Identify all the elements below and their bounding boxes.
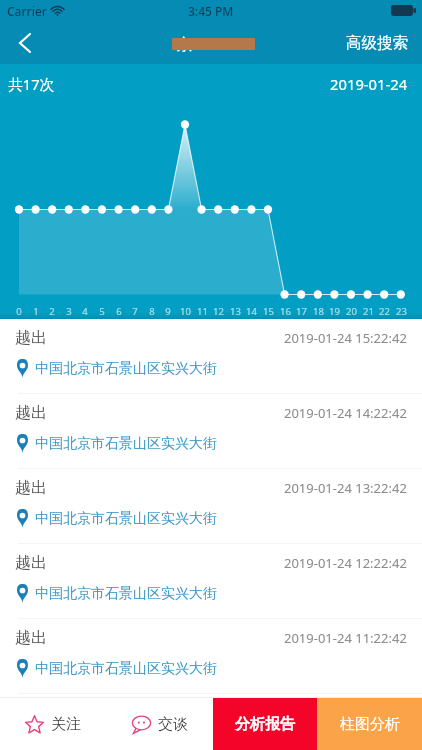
button[interactable]: 越出 <box>0 319 422 394</box>
staticText: 京A88888 <box>177 33 250 55</box>
staticText: 11 <box>197 305 208 318</box>
staticText: 9 <box>165 305 171 318</box>
staticText: 关注 <box>51 715 81 734</box>
staticText: 19 <box>329 305 340 318</box>
button[interactable]: 越出 <box>0 619 422 694</box>
button[interactable]: 分析报告 <box>213 698 317 750</box>
staticText: 2019-01-24 13:22:42 <box>284 479 407 497</box>
button[interactable]: 越出 <box>0 544 422 619</box>
staticText: 0 <box>16 305 22 318</box>
staticText: 5 <box>99 305 105 318</box>
staticText: 中国北京市石景山区实兴大街 <box>35 660 217 678</box>
staticText: 分析报告 <box>235 715 295 734</box>
staticText: 越出 <box>15 553 47 573</box>
staticText: 越出 <box>15 403 47 423</box>
staticText: 12 <box>213 305 224 318</box>
staticText: 2019-01-24 14:22:42 <box>284 404 407 422</box>
button[interactable]: 越出 <box>0 394 422 469</box>
staticText: 10 <box>180 305 191 318</box>
staticText: 2019-01-24 <box>330 74 408 94</box>
staticText: 1 <box>33 305 39 318</box>
staticText: 共17次 <box>8 74 55 94</box>
staticText: 柱图分析 <box>340 715 400 734</box>
staticText: 15 <box>263 305 274 318</box>
staticText: 2 <box>49 305 55 318</box>
staticText: 中国北京市石景山区实兴大街 <box>35 360 217 378</box>
button[interactable]: 越出 <box>0 469 422 544</box>
staticText: 3:45 PM <box>188 3 234 19</box>
staticText: 14 <box>246 305 257 318</box>
button[interactable]: 高级搜索 <box>346 33 408 53</box>
staticText: 4 <box>82 305 88 318</box>
staticText: 16 <box>280 305 291 318</box>
staticText: 越出 <box>15 328 47 348</box>
staticText: 中国北京市石景山区实兴大街 <box>35 435 217 453</box>
staticText: 20 <box>346 305 357 318</box>
staticText: 13 <box>230 305 241 318</box>
staticText: 交谈 <box>158 715 188 734</box>
staticText: 22 <box>379 305 390 318</box>
button[interactable]: 柱图分析 <box>317 698 422 750</box>
staticText: Carrier <box>7 3 47 19</box>
staticText: 23 <box>396 305 407 318</box>
staticText: 中国北京市石景山区实兴大街 <box>35 510 217 528</box>
staticText: 7 <box>132 305 138 318</box>
staticText: 18 <box>313 305 324 318</box>
button[interactable]: 关注 <box>0 698 106 750</box>
staticText: 3 <box>66 305 72 318</box>
staticText: 6 <box>116 305 122 318</box>
staticText: 2019-01-24 11:22:42 <box>284 629 407 647</box>
staticText: 17 <box>296 305 307 318</box>
button[interactable]: Back <box>6 24 44 62</box>
staticText: 越出 <box>15 478 47 498</box>
staticText: 中国北京市石景山区实兴大街 <box>35 585 217 603</box>
staticText: 高级搜索 <box>346 33 408 53</box>
staticText: 8 <box>149 305 155 318</box>
button[interactable]: 交谈 <box>106 698 213 750</box>
staticText: 2019-01-24 12:22:42 <box>284 554 407 572</box>
staticText: 2019-01-24 15:22:42 <box>284 329 407 347</box>
staticText: 越出 <box>15 628 47 648</box>
staticText: 21 <box>363 305 374 318</box>
